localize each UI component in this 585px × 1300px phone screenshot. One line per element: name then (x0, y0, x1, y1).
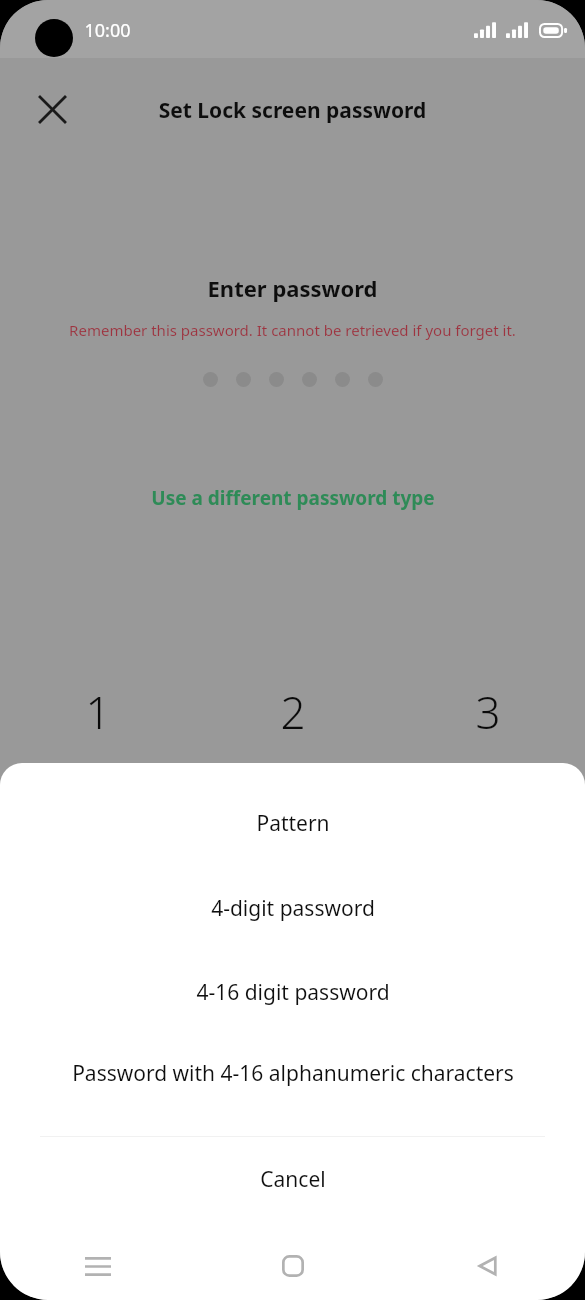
staticText: 3 (475, 682, 501, 742)
staticText: 2 (280, 682, 306, 742)
staticText: 4-digit password (211, 894, 375, 923)
staticText: 10:00 (84, 18, 131, 43)
button[interactable]: Back (390, 1232, 585, 1300)
staticText: Use a different password type (151, 485, 435, 511)
button[interactable]: Close (24, 81, 80, 137)
button[interactable]: 4-16 digit password (0, 968, 585, 1016)
button[interactable]: 4-digit password (0, 884, 585, 932)
button[interactable]: Password with 4-16 alphanumeric characte… (0, 1032, 585, 1114)
button[interactable]: 1 (0, 678, 195, 746)
button[interactable]: Use a different password type (0, 478, 585, 518)
staticText: Password with 4-16 alphanumeric characte… (72, 1059, 514, 1088)
staticText: Pattern (256, 809, 330, 838)
staticText: Enter password (0, 273, 585, 303)
staticText: Remember this password. It cannot be ret… (0, 320, 585, 340)
staticText: Cancel (260, 1165, 326, 1194)
staticText: 1 (85, 682, 111, 742)
staticText: 4-16 digit password (196, 978, 390, 1007)
button[interactable]: 2 (195, 678, 390, 746)
button[interactable]: Home (195, 1232, 390, 1300)
button[interactable]: 3 (390, 678, 585, 746)
staticText: Set Lock screen password (0, 96, 585, 125)
button[interactable]: Cancel (0, 1137, 585, 1221)
button[interactable]: Pattern (0, 799, 585, 847)
button[interactable]: Recent apps (0, 1232, 195, 1300)
